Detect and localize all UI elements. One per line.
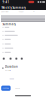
staticText: 4 h 12 min — [5, 69, 11, 71]
staticText: Duration — [5, 65, 18, 68]
button[interactable]: Continue — [1, 86, 11, 91]
button[interactable]: Duration — [0, 64, 46, 72]
staticText: Overview — [1, 11, 8, 13]
button[interactable]: Action — [14, 57, 18, 60]
staticText: Today — [19, 11, 24, 13]
staticText: Continue — [2, 87, 9, 89]
staticText: Not now — [15, 87, 20, 89]
button[interactable]: Not now — [13, 86, 21, 91]
staticText: Weekly Summary — [1, 6, 25, 9]
staticText: Summary — [2, 22, 15, 26]
button[interactable]: Action — [20, 57, 24, 60]
button[interactable]: Action — [2, 57, 6, 60]
staticText: All — [33, 11, 34, 13]
staticText: 9:41 — [3, 0, 10, 4]
button[interactable]: Action — [9, 57, 12, 60]
